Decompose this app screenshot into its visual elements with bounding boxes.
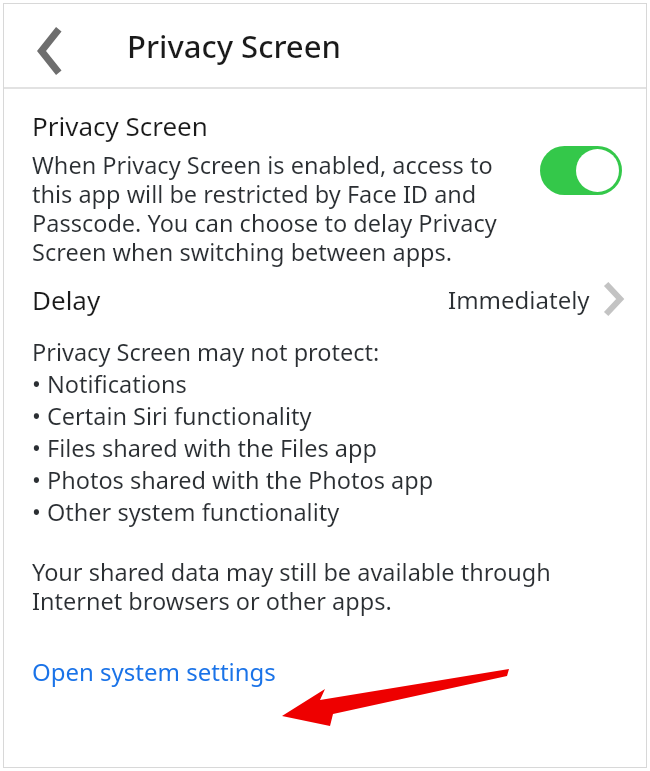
staticText: • Other system functionality	[32, 496, 340, 528]
staticText: Delay	[32, 282, 101, 317]
staticText: Privacy Screen may not protect:	[32, 336, 380, 368]
staticText: • Notifications	[32, 368, 187, 400]
staticText: Privacy Screen	[127, 25, 341, 67]
button[interactable]: Back	[23, 23, 79, 79]
staticText: • Photos shared with the Photos app	[32, 464, 434, 496]
staticText: When Privacy Screen is enabled, access t…	[32, 149, 524, 268]
staticText: • Files shared with the Files app	[32, 432, 377, 464]
button[interactable]: Delay	[3, 268, 647, 330]
staticText: Open system settings	[32, 655, 276, 688]
button[interactable]: Open system settings	[32, 655, 276, 688]
staticText: Your shared data may still be available …	[32, 556, 631, 617]
staticText: Privacy Screen	[32, 108, 208, 143]
staticText: Immediately	[448, 283, 590, 316]
staticText: • Certain Siri functionality	[32, 400, 312, 432]
button[interactable]: Privacy Screen toggle, on	[540, 146, 622, 195]
